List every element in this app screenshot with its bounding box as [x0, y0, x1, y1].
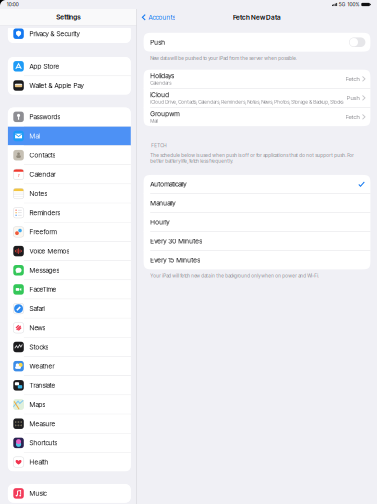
button[interactable]: 7 — [8, 165, 131, 184]
staticText: Holidays — [150, 72, 174, 80]
button[interactable]: Contacts — [8, 146, 131, 164]
staticText: App Store — [29, 62, 59, 70]
button[interactable]: Measure — [8, 414, 131, 433]
staticText: Contacts — [29, 151, 55, 159]
staticText: News — [29, 324, 45, 332]
button[interactable]: Notes — [8, 184, 131, 203]
button[interactable]: Voice Memos — [8, 242, 131, 260]
staticText: Safari — [29, 305, 44, 313]
staticText: Weather — [29, 362, 54, 370]
button[interactable]: Reminders — [8, 203, 131, 222]
staticText: Wallet & Apple Pay — [29, 81, 83, 90]
staticText: Your iPad will fetch new data in the bac… — [150, 273, 319, 279]
button[interactable]: Every 15 Minutes — [144, 251, 370, 269]
staticText: Privacy & Security — [29, 30, 79, 38]
staticText: Measure — [29, 420, 55, 428]
button[interactable]: Safari — [8, 299, 131, 318]
button[interactable]: Privacy & Security — [8, 24, 131, 43]
button[interactable]: Every 30 Minutes — [144, 232, 370, 250]
button[interactable]: Shortcuts — [8, 434, 131, 452]
staticText: Passwords — [29, 113, 60, 121]
staticText: Calendar — [29, 170, 55, 178]
staticText: Every 15 Minutes — [150, 256, 200, 264]
staticText: FaceTime — [29, 285, 56, 293]
button[interactable]: Music — [8, 484, 131, 503]
button[interactable]: FaceTime — [8, 280, 131, 299]
button[interactable]: App Store — [8, 57, 131, 76]
staticText: Manually — [150, 199, 175, 207]
button[interactable]: Automatically — [144, 175, 370, 193]
button[interactable]: Mail — [8, 127, 131, 145]
staticText: Hourly — [150, 218, 169, 226]
staticText: Calendars — [150, 80, 171, 86]
staticText: 10:00 — [7, 1, 19, 7]
staticText: Health — [29, 458, 48, 466]
button[interactable]: Wallet & Apple Pay — [8, 76, 131, 95]
staticText: iCloud Drive, Contacts, Calendars, Remin… — [150, 99, 343, 105]
staticText: 7 — [18, 173, 20, 178]
button[interactable]: Messages — [8, 261, 131, 280]
staticText: Freeform — [29, 228, 56, 236]
staticText: Reminders — [29, 209, 60, 217]
button[interactable]: Hourly — [144, 213, 370, 231]
staticText: Push — [346, 94, 359, 102]
button[interactable]: Stocks — [8, 338, 131, 356]
button[interactable]: Passwords — [8, 107, 131, 126]
staticText: Music — [29, 489, 46, 497]
button[interactable]: Translate — [8, 376, 131, 395]
button[interactable]: News — [8, 318, 131, 337]
staticText: Automatically — [150, 180, 186, 188]
button[interactable]: Accounts — [137, 10, 175, 24]
button[interactable]: iCloud — [144, 89, 370, 107]
button[interactable]: Holidays — [144, 70, 370, 88]
staticText: 5G — [339, 1, 346, 7]
button[interactable]: Maps — [8, 395, 131, 414]
staticText: Translate — [29, 381, 55, 389]
button[interactable]: Manually — [144, 194, 370, 212]
staticText: Push — [150, 38, 165, 46]
staticText: Messages — [29, 266, 59, 274]
staticText: 100% — [347, 1, 359, 7]
staticText: Stocks — [29, 343, 48, 351]
staticText: The schedule below is used when push is … — [150, 152, 354, 164]
staticText: Fetch — [345, 75, 359, 83]
staticText: Settings — [56, 13, 80, 21]
staticText: Fetch — [345, 113, 359, 121]
staticText: Voice Memos — [29, 247, 69, 255]
staticText: Shortcuts — [29, 439, 57, 447]
staticText: Mail — [29, 132, 40, 140]
staticText: Accounts — [148, 13, 175, 21]
staticText: New data will be pushed to your iPad fro… — [150, 55, 297, 61]
staticText: Groupwm — [150, 110, 179, 118]
button[interactable]: Weather — [8, 357, 131, 375]
button[interactable]: Groupwm — [144, 108, 370, 126]
staticText: FETCH — [151, 142, 166, 148]
staticText: Maps — [29, 400, 45, 409]
button[interactable]: Freeform — [8, 223, 131, 241]
staticText: Mail — [150, 118, 158, 124]
staticText: Every 30 Minutes — [150, 237, 202, 245]
staticText: Notes — [29, 189, 47, 198]
staticText: Fetch New Data — [233, 13, 281, 21]
button[interactable]: Health — [8, 453, 131, 471]
staticText: iCloud — [150, 91, 169, 99]
